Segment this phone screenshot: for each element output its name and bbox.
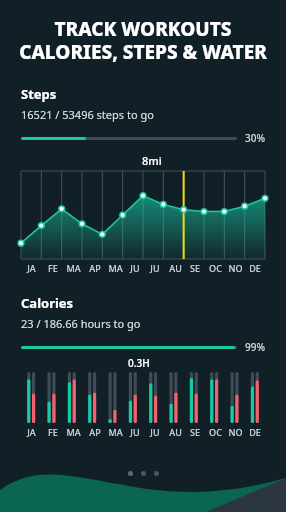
button[interactable]: Page 2 xyxy=(141,471,146,476)
staticText: 16521 / 53496 steps to go xyxy=(21,107,154,122)
staticText: AU xyxy=(169,262,182,274)
staticText: JU xyxy=(130,426,140,438)
staticText: SE xyxy=(190,426,200,438)
staticText: DE xyxy=(249,262,261,274)
staticText: Calories xyxy=(21,294,74,312)
button[interactable]: 30% xyxy=(21,131,265,145)
staticText: JU xyxy=(150,262,160,274)
staticText: JU xyxy=(150,426,160,438)
staticText: JA xyxy=(27,426,36,438)
staticText: MA xyxy=(66,262,81,274)
staticText: AP xyxy=(89,426,101,438)
staticText: FE xyxy=(48,426,58,438)
staticText: NO xyxy=(228,262,243,274)
staticText: AP xyxy=(89,262,101,274)
staticText: JA xyxy=(27,262,36,274)
staticText: SE xyxy=(190,262,200,274)
button[interactable]: Steps chart xyxy=(21,171,265,259)
staticText: 23 / 186.66 hours to go xyxy=(21,316,141,331)
staticText: DE xyxy=(249,426,261,438)
staticText: 99% xyxy=(245,340,265,354)
button[interactable]: Page 1 xyxy=(128,471,133,476)
staticText: 8mi xyxy=(142,153,286,168)
staticText: TRACK WORKOUTS CALORIES, STEPS & WATER xyxy=(8,16,278,65)
staticText: JU xyxy=(130,262,140,274)
staticText: 30% xyxy=(245,131,265,145)
staticText: OC xyxy=(209,262,222,274)
staticText: MA xyxy=(66,426,81,438)
button[interactable]: Calories chart xyxy=(21,372,265,423)
staticText: Steps xyxy=(21,85,57,103)
staticText: 0.3H xyxy=(128,356,286,370)
button[interactable]: 99% xyxy=(21,340,265,354)
staticText: FE xyxy=(48,262,58,274)
staticText: MA xyxy=(108,262,123,274)
button[interactable]: Page 3 xyxy=(154,471,159,476)
staticText: MA xyxy=(108,426,123,438)
staticText: AU xyxy=(169,426,182,438)
staticText: OC xyxy=(209,426,222,438)
staticText: NO xyxy=(228,426,243,438)
